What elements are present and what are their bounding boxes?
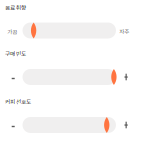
button[interactable] [0, 69, 141, 85]
staticText: 커피 선호도 [5, 97, 31, 105]
button[interactable] [0, 117, 141, 133]
staticText: 음료 취향 [5, 3, 26, 11]
staticText: 자주 [119, 27, 129, 35]
staticText: 구매 빈도 [5, 49, 26, 57]
staticText: 가끔 [7, 28, 17, 36]
button[interactable]: 가끔 [0, 22, 141, 38]
